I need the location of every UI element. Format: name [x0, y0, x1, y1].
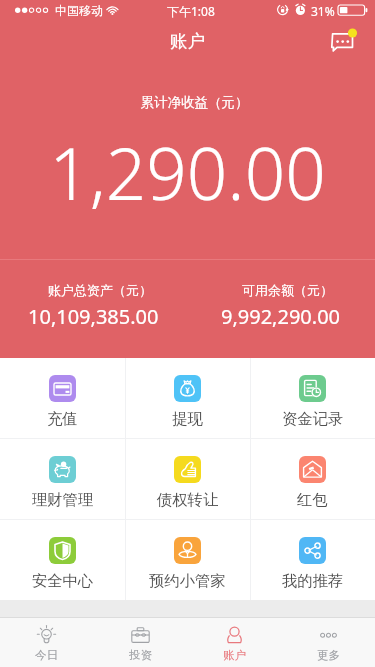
staticText: 可用余额（元） — [242, 282, 333, 298]
staticText: 预约小管家 — [149, 571, 226, 590]
staticText: 下午1:08 — [167, 3, 215, 19]
button[interactable]: 今日 — [0, 618, 93, 667]
button[interactable]: 我的推荐 — [250, 520, 375, 600]
button[interactable]: Messages — [321, 21, 363, 55]
staticText: 投资 — [129, 648, 152, 662]
staticText: 累计净收益（元） — [7, 94, 375, 111]
staticText: 中国移动 — [55, 3, 103, 18]
staticText: 红包 — [297, 490, 328, 509]
staticText: 充值 — [47, 409, 78, 428]
button[interactable]: 红包 — [250, 439, 375, 519]
staticText: 今日 — [35, 648, 58, 662]
button[interactable]: 投资 — [93, 618, 187, 667]
staticText: 我的推荐 — [282, 571, 344, 590]
button[interactable]: 债权转让 — [125, 439, 250, 519]
staticText: 债权转让 — [157, 490, 219, 509]
staticText: 9,992,290.00 — [221, 303, 341, 330]
staticText: 提现 — [172, 409, 203, 428]
button[interactable]: 预约小管家 — [125, 520, 250, 600]
button[interactable]: 提现 — [125, 358, 250, 438]
staticText: 资金记录 — [282, 409, 344, 428]
button[interactable]: 充值 — [0, 358, 125, 438]
button[interactable]: 安全中心 — [0, 520, 125, 600]
staticText: 10,109,385.00 — [28, 303, 159, 330]
button[interactable]: 资金记录 — [250, 358, 375, 438]
button[interactable]: 账户 — [187, 618, 281, 667]
staticText: 账户 — [0, 30, 375, 52]
staticText: 账户 — [223, 648, 246, 662]
staticText: 理财管理 — [32, 490, 94, 509]
staticText: 31% — [311, 3, 335, 19]
button[interactable]: 理财管理 — [0, 439, 125, 519]
staticText: 安全中心 — [32, 571, 94, 590]
staticText: 更多 — [317, 648, 340, 662]
staticText: 账户总资产（元） — [48, 282, 152, 298]
staticText: 1,290.00 — [0, 124, 375, 221]
button[interactable]: 更多 — [281, 618, 375, 667]
